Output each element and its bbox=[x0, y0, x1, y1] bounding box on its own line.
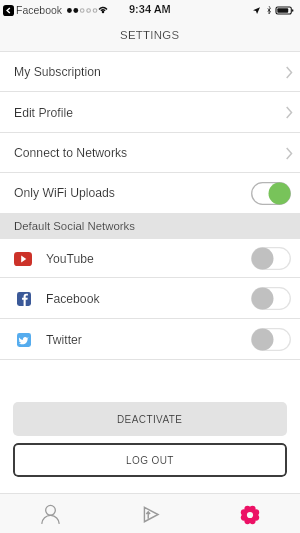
staticText: Facebook bbox=[16, 4, 63, 16]
button[interactable]: Facebook bbox=[0, 278, 300, 319]
button[interactable]: YouTube bbox=[0, 239, 300, 278]
staticText: Only WiFi Uploads bbox=[14, 186, 115, 200]
staticText: My Subscription bbox=[14, 65, 101, 79]
button[interactable]: Upload bbox=[100, 493, 200, 533]
button[interactable]: Off bbox=[251, 328, 291, 351]
button[interactable]: Twitter bbox=[0, 319, 300, 360]
button[interactable]: Settings bbox=[200, 493, 300, 533]
button[interactable]: LOG OUT bbox=[13, 443, 287, 477]
staticText: YouTube bbox=[46, 252, 94, 266]
button[interactable]: Only WiFi Uploads bbox=[0, 173, 300, 213]
button[interactable]: Profile bbox=[0, 493, 100, 533]
button[interactable]: Connect to Networks bbox=[0, 133, 300, 173]
button[interactable]: Edit Profile bbox=[0, 92, 300, 133]
staticText: DEACTIVATE bbox=[117, 414, 183, 425]
staticText: Connect to Networks bbox=[14, 146, 128, 160]
staticText: Facebook bbox=[46, 292, 100, 306]
staticText: Default Social Networks bbox=[14, 220, 135, 233]
button[interactable]: My Subscription bbox=[0, 52, 300, 92]
button[interactable]: Off bbox=[251, 247, 291, 270]
button[interactable]: DEACTIVATE bbox=[13, 402, 287, 436]
staticText: Twitter bbox=[46, 333, 82, 347]
staticText: SETTINGS bbox=[120, 29, 180, 42]
button[interactable]: On bbox=[251, 182, 291, 205]
staticText: Edit Profile bbox=[14, 106, 73, 120]
staticText: LOG OUT bbox=[126, 455, 174, 466]
staticText: 9:34 AM bbox=[129, 3, 171, 15]
button[interactable]: Off bbox=[251, 287, 291, 310]
